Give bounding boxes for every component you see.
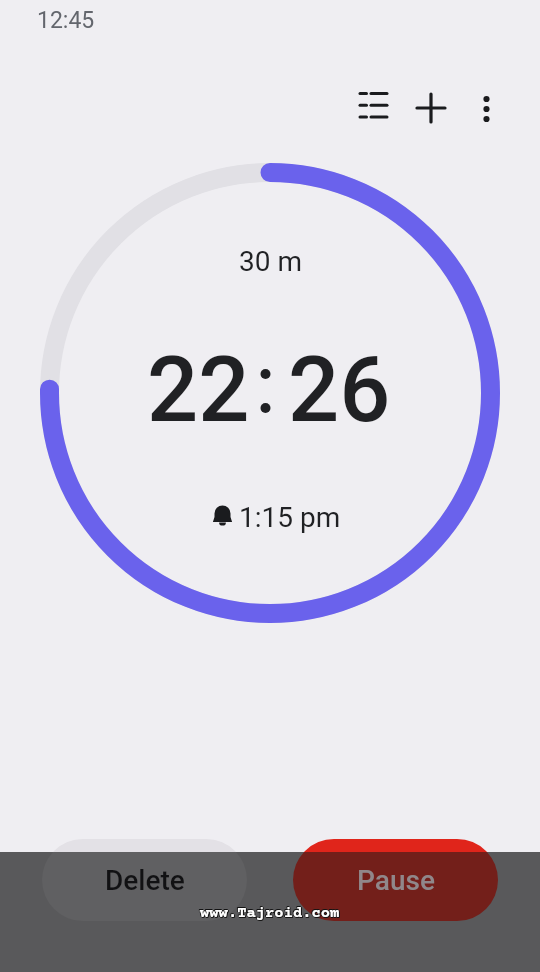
button[interactable]: [409, 85, 453, 129]
staticText: 12:45: [37, 7, 95, 34]
staticText: www.Tajroid.com: [200, 904, 340, 921]
staticText: Pause: [357, 864, 435, 897]
button[interactable]: Pause: [293, 839, 498, 921]
button[interactable]: [464, 85, 508, 129]
staticText: www.Tajroid.com: [199, 904, 339, 921]
staticText: 30 m: [239, 245, 302, 278]
staticText: www.Tajroid.com: [200, 905, 340, 922]
staticText: 1:15 pm: [239, 501, 341, 534]
staticText: www.Tajroid.com: [199, 905, 339, 922]
staticText: Delete: [105, 864, 185, 897]
button[interactable]: [352, 85, 396, 129]
button[interactable]: Delete: [42, 839, 247, 921]
staticText: www.Tajroid.com: [200, 906, 340, 923]
staticText: www.Tajroid.com: [201, 905, 341, 922]
staticText: 22: [147, 338, 250, 443]
staticText: 26: [288, 338, 391, 443]
staticText: www.Tajroid.com: [201, 906, 341, 923]
